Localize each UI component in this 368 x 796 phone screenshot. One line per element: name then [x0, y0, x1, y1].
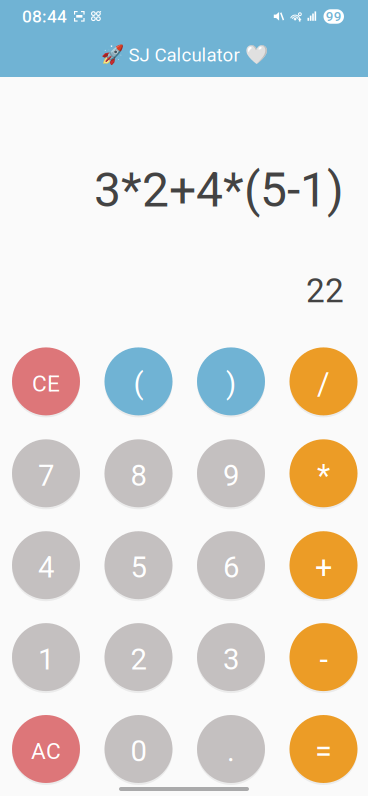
staticText: 4 — [38, 550, 54, 585]
staticText: 🚀 SJ Calculator 🤍 — [100, 44, 267, 66]
staticText: 3*2+4*(5-1) — [94, 162, 344, 218]
staticText: . — [227, 734, 235, 768]
staticText: / — [317, 366, 330, 402]
button[interactable]: - — [289, 623, 357, 691]
staticText: 7 — [38, 458, 54, 493]
staticText: 0 — [130, 734, 146, 768]
button[interactable]: * — [289, 439, 357, 507]
staticText: 3 — [223, 642, 239, 677]
staticText: - — [319, 641, 327, 677]
staticText: 9 — [223, 458, 239, 493]
staticText: 08:44 — [22, 6, 67, 27]
staticText: 6 — [223, 550, 239, 585]
button[interactable]: 8 — [104, 439, 172, 507]
staticText: 1 — [38, 642, 54, 677]
button[interactable]: . — [197, 715, 265, 783]
staticText: 8 — [130, 458, 146, 493]
button[interactable]: CE — [12, 347, 80, 415]
staticText: AC — [31, 738, 61, 765]
button[interactable]: ( — [104, 347, 172, 415]
staticText: 99 — [326, 9, 342, 24]
button[interactable]: 2 — [104, 623, 172, 691]
button[interactable]: = — [289, 715, 357, 783]
button[interactable]: 5 — [104, 531, 172, 599]
button[interactable]: ) — [197, 347, 265, 415]
staticText: 2 — [130, 642, 146, 677]
button[interactable]: AC — [12, 715, 80, 783]
button[interactable]: / — [289, 347, 357, 415]
staticText: + — [315, 549, 332, 585]
button[interactable]: 1 — [12, 623, 80, 691]
staticText: = — [315, 733, 332, 769]
staticText: * — [317, 458, 330, 493]
staticText: CE — [32, 370, 60, 397]
staticText: 22 — [306, 271, 344, 310]
button[interactable]: 4 — [12, 531, 80, 599]
button[interactable]: 0 — [104, 715, 172, 783]
button[interactable]: 7 — [12, 439, 80, 507]
button[interactable]: 9 — [197, 439, 265, 507]
staticText: 5 — [130, 550, 146, 585]
button[interactable]: + — [289, 531, 357, 599]
staticText: ) — [226, 366, 236, 401]
staticText: ( — [133, 366, 143, 401]
button[interactable]: 6 — [197, 531, 265, 599]
button[interactable]: 3 — [197, 623, 265, 691]
